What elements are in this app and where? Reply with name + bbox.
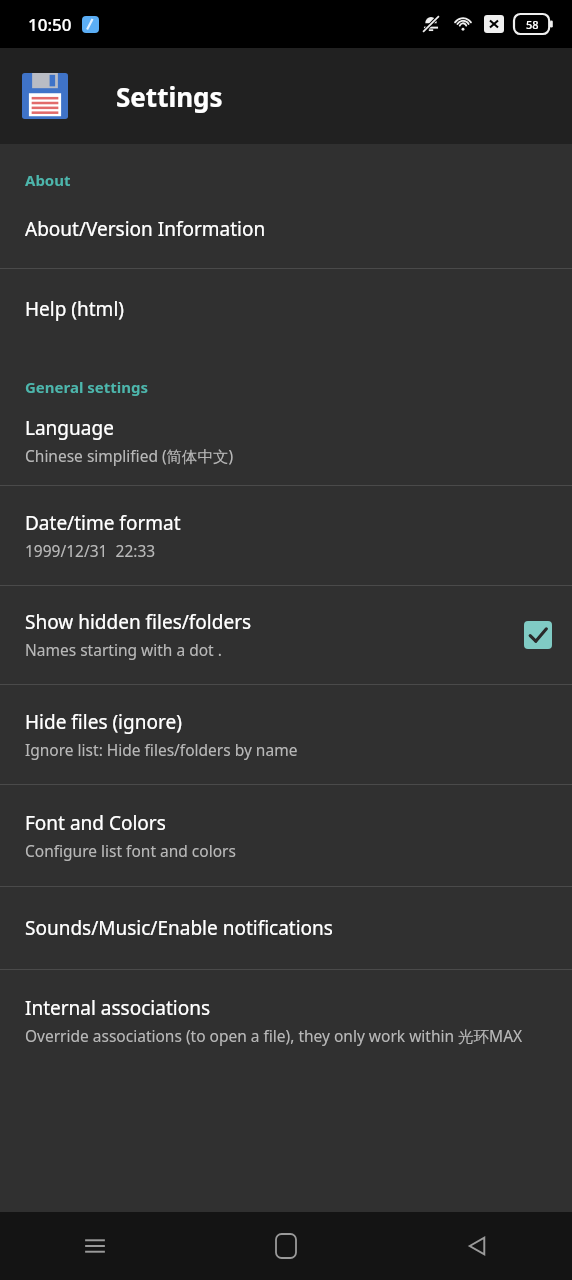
staticText: Help (html) xyxy=(25,296,124,322)
staticText: Chinese simplified (简体中文) xyxy=(25,445,234,466)
staticText: Hide files (ignore) xyxy=(25,709,182,735)
button[interactable]: Date/time format xyxy=(0,486,572,585)
staticText: About xyxy=(25,170,71,190)
staticText: 10:50 xyxy=(28,13,72,36)
staticText: Internal associations xyxy=(25,995,210,1021)
staticText: Names starting with a dot . xyxy=(25,639,222,660)
button[interactable]: Show hidden files/folders xyxy=(0,586,572,684)
staticText: Date/time format xyxy=(25,510,181,536)
staticText: Font and Colors xyxy=(25,810,166,836)
button[interactable]: Home xyxy=(190,1212,381,1280)
staticText: About/Version Information xyxy=(25,216,266,242)
staticText: General settings xyxy=(25,377,149,397)
button[interactable]: Sounds/Music/Enable notifications xyxy=(0,887,572,969)
staticText: Ignore list: Hide files/folders by name xyxy=(25,739,298,760)
button[interactable]: About/Version Information xyxy=(0,190,572,268)
button[interactable]: Language xyxy=(0,397,572,485)
button[interactable]: Font and Colors xyxy=(0,785,572,886)
staticText: 58 xyxy=(526,17,539,32)
button[interactable]: Help (html) xyxy=(0,269,572,349)
staticText: 1999/12/31 22:33 xyxy=(25,540,156,561)
staticText: Override associations (to open a file), … xyxy=(25,1025,523,1046)
staticText: Configure list font and colors xyxy=(25,840,236,861)
button[interactable]: Back xyxy=(381,1212,572,1280)
staticText: Sounds/Music/Enable notifications xyxy=(25,915,333,941)
staticText: Show hidden files/folders xyxy=(25,609,252,635)
button[interactable]: Hide files (ignore) xyxy=(0,685,572,784)
button[interactable]: Internal associations xyxy=(0,970,572,1056)
staticText: Settings xyxy=(116,79,223,114)
button[interactable]: Recents xyxy=(0,1212,190,1280)
staticText: Language xyxy=(25,415,114,441)
